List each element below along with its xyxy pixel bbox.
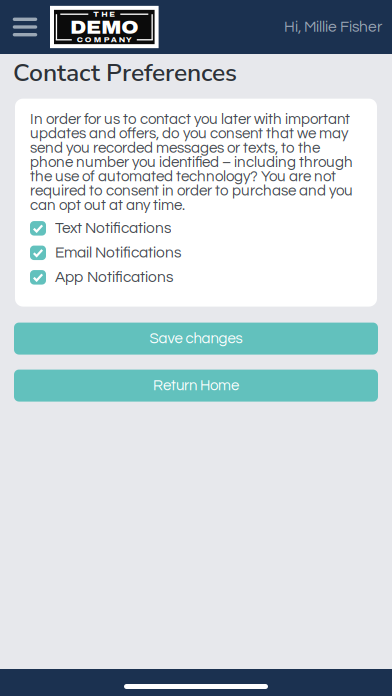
- button[interactable]: Text Notifications: [30, 216, 362, 241]
- button[interactable]: Save changes: [14, 323, 378, 355]
- staticText: Text Notifications: [55, 220, 171, 236]
- staticText: Email Notifications: [55, 245, 181, 261]
- staticText: T H E: [93, 10, 115, 18]
- staticText: Save changes: [149, 331, 242, 346]
- staticText: C O M P A N Y: [77, 36, 132, 44]
- staticText: Hi, Millie Fisher: [284, 19, 382, 35]
- button[interactable]: Menu: [0, 0, 50, 54]
- staticText: DEMO: [70, 18, 138, 38]
- staticText: App Notifications: [55, 269, 173, 285]
- button[interactable]: Email Notifications: [30, 241, 362, 265]
- staticText: Contact Preferences: [13, 56, 237, 90]
- button[interactable]: Return Home: [14, 370, 378, 402]
- staticText: In order for us to contact you later wit…: [30, 112, 353, 213]
- button[interactable]: App Notifications: [30, 265, 362, 290]
- staticText: Return Home: [153, 378, 239, 393]
